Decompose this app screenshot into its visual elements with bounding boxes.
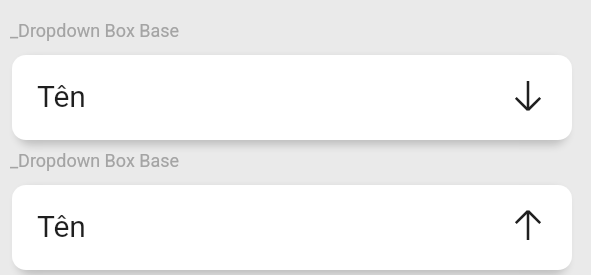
button[interactable]: Tên xyxy=(12,55,572,140)
button[interactable]: Tên xyxy=(12,185,572,270)
staticText: Tên xyxy=(37,209,86,244)
button[interactable]: Expand dropdown xyxy=(508,78,548,118)
staticText: _Dropdown Box Base xyxy=(10,150,180,171)
staticText: _Dropdown Box Base xyxy=(10,20,180,41)
staticText: Tên xyxy=(37,79,86,114)
button[interactable]: Collapse dropdown xyxy=(508,208,548,248)
